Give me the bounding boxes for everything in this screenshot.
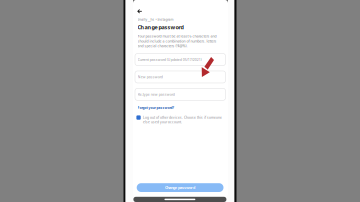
- staticText: Current password (Updated 05/17/2021): [138, 57, 202, 62]
- button[interactable]: Current password (Updated 05/17/2021): [135, 54, 225, 66]
- staticText: Change password: [137, 23, 183, 31]
- staticText: Re-type new password: [138, 92, 175, 97]
- button[interactable]: Forgot your password?: [133, 100, 228, 110]
- button[interactable]: Back: [133, 0, 228, 15]
- button[interactable]: Log out of other devices. Choose this if…: [133, 110, 228, 124]
- staticText: tmally___hs • Instagram: [137, 17, 173, 22]
- button[interactable]: Re-type new password: [135, 88, 225, 100]
- staticText: Change password: [165, 185, 195, 190]
- staticText: Forgot your password?: [137, 106, 174, 110]
- button[interactable]: Change password: [137, 183, 223, 192]
- staticText: Log out of other devices. Choose this if…: [143, 115, 222, 124]
- button[interactable]: New password: [135, 71, 225, 83]
- staticText: Your password must be at least 6 charact…: [137, 34, 216, 48]
- staticText: New password: [138, 75, 163, 79]
